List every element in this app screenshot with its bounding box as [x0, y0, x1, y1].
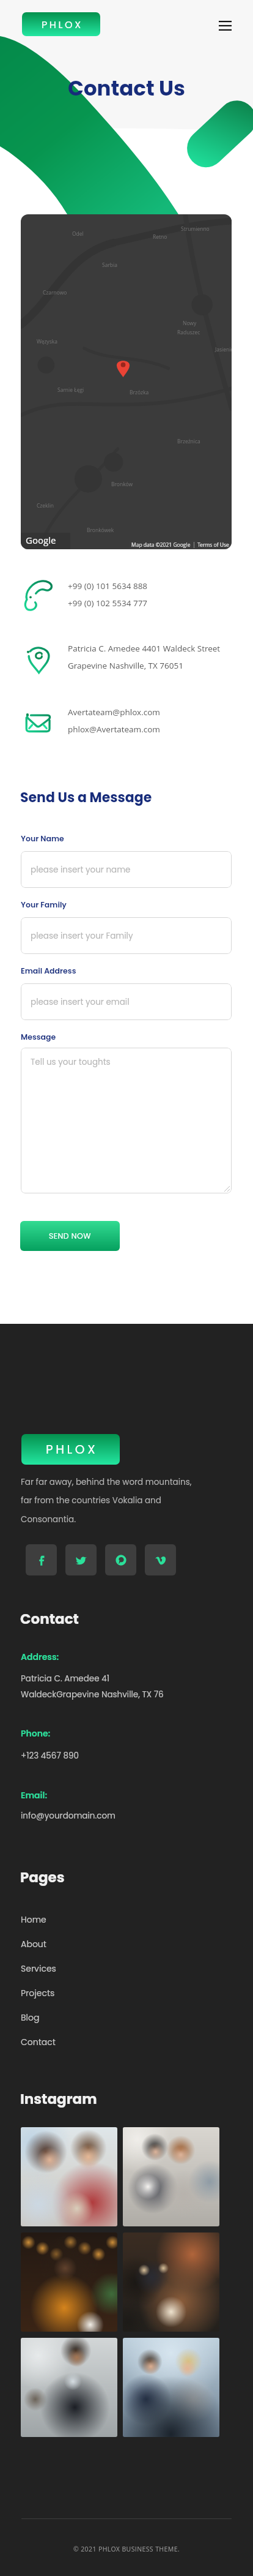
staticText: Contact — [20, 1609, 79, 1629]
staticText: SEND NOW — [49, 1231, 91, 1241]
staticText: Brzeźnica — [177, 438, 200, 445]
staticText: Sarbia — [102, 261, 117, 269]
button[interactable]: SEND NOW — [20, 1221, 120, 1251]
button[interactable]: PHLOX — [21, 1434, 120, 1465]
staticText: please insert your email — [31, 996, 130, 1008]
button[interactable]: Instagram photo — [21, 2232, 117, 2332]
staticText: +99 (0) 101 5634 888 +99 (0) 102 5534 77… — [68, 580, 148, 609]
staticText: Your Family — [21, 899, 67, 910]
staticText: Map data ©2021 Google — [131, 541, 191, 549]
button[interactable]: Instagram photo — [123, 2338, 219, 2437]
button[interactable]: please insert your email — [21, 983, 232, 1020]
button[interactable]: please insert your name — [21, 851, 232, 888]
staticText: Avertateam@phlox.com phlox@Avertateam.co… — [68, 707, 160, 735]
staticText: About — [21, 1938, 46, 1950]
button[interactable]: Home — [21, 1910, 232, 1929]
button[interactable]: Map location — [21, 214, 232, 549]
staticText: Terms of Use — [197, 541, 229, 549]
button[interactable]: Instagram photo — [21, 2127, 117, 2226]
staticText: please insert your Family — [31, 930, 133, 942]
button[interactable]: +99 (0) 101 5634 888 +99 (0) 102 5534 77… — [20, 577, 234, 612]
staticText: Email: — [21, 1789, 48, 1801]
staticText: Węzyska — [37, 338, 57, 345]
staticText: Sarnie Łęgi — [57, 386, 84, 394]
button[interactable]: Vimeo — [145, 1544, 176, 1575]
staticText: Patricia C. Amedee 4401 Waldeck Street G… — [68, 643, 221, 671]
button[interactable]: PHLOX — [22, 12, 100, 36]
staticText: Contact — [21, 2036, 56, 2048]
staticText: Odel — [72, 230, 84, 238]
staticText: Brzózka — [130, 389, 149, 396]
staticText: Bronków — [111, 481, 133, 488]
staticText: Czarnowo — [43, 289, 67, 296]
staticText: Message — [21, 1032, 56, 1042]
button[interactable]: Open menu — [215, 15, 236, 36]
button[interactable]: Instagram photo — [21, 2338, 117, 2437]
button[interactable]: Patricia C. Amedee 4401 Waldeck Street G… — [20, 639, 234, 675]
staticText: Send Us a Message — [20, 788, 152, 807]
button[interactable]: Twitter — [65, 1544, 97, 1575]
staticText: PHLOX — [46, 1441, 98, 1458]
staticText: info@yourdomain.com — [21, 1810, 116, 1822]
staticText: Instagram — [20, 2089, 97, 2109]
button[interactable]: Contact — [21, 2033, 232, 2051]
staticText: +123 4567 890 — [21, 1750, 79, 1762]
staticText: Pages — [20, 1868, 65, 1887]
staticText: Google — [26, 534, 56, 546]
staticText: Strumienno — [181, 225, 210, 233]
staticText: Nowy — [183, 320, 197, 327]
button[interactable]: Services — [21, 1959, 232, 1978]
button[interactable]: Instagram photo — [123, 2127, 219, 2226]
button[interactable]: Blog — [21, 2008, 232, 2027]
staticText: Czeklin — [37, 502, 54, 509]
staticText: Tell us your toughts — [31, 1056, 111, 1068]
staticText: Home — [21, 1913, 46, 1926]
button[interactable]: Instagram photo — [123, 2232, 219, 2332]
button[interactable]: please insert your Family — [21, 917, 232, 954]
button[interactable]: About — [21, 1935, 232, 1953]
button[interactable]: Pinterest — [105, 1544, 136, 1575]
staticText: Email Address — [21, 966, 76, 976]
staticText: Projects — [21, 1987, 55, 1999]
staticText: please insert your name — [31, 864, 131, 876]
staticText: Far far away, behind the word mountains,… — [21, 1476, 192, 1525]
button[interactable]: Facebook — [26, 1544, 57, 1575]
button[interactable]: Projects — [21, 1984, 232, 2002]
staticText: PHLOX — [42, 18, 83, 31]
staticText: Services — [21, 1962, 56, 1975]
staticText: Address: — [21, 1651, 59, 1663]
staticText: © 2021 PHLOX BUSINESS THEME. — [0, 2545, 253, 2553]
staticText: Bronkówek — [87, 527, 114, 534]
staticText: Your Name — [21, 833, 64, 844]
staticText: Patricia C. Amedee 41 WaldeckGrapevine N… — [21, 1673, 164, 1700]
staticText: Blog — [21, 2011, 40, 2024]
staticText: Phone: — [21, 1727, 51, 1740]
button[interactable]: Tell us your toughts — [21, 1048, 232, 1193]
staticText: Jasienie — [215, 346, 232, 353]
staticText: Raduszec — [177, 329, 200, 336]
staticText: Contact Us — [68, 73, 185, 103]
staticText: Retno — [153, 233, 167, 241]
button[interactable]: Avertateam@phlox.com phlox@Avertateam.co… — [20, 703, 234, 738]
